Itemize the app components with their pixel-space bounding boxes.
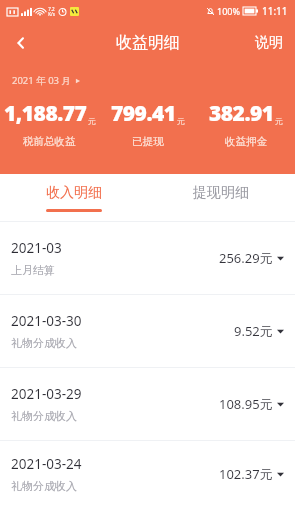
staticText: 礼物分成收入 — [11, 479, 77, 493]
button[interactable]: 说明 — [243, 22, 295, 64]
staticText: 说明 — [255, 34, 283, 52]
staticText: 元 — [88, 116, 96, 126]
staticText: 2021-03-30 — [11, 312, 82, 330]
staticText: 11:11 — [262, 4, 288, 18]
staticText: 礼物分成收入 — [11, 336, 77, 350]
staticText: 102.37元 — [219, 465, 273, 483]
staticText: 收入明细 — [46, 184, 102, 202]
staticText: 2021 年 03 月 — [12, 74, 72, 87]
staticText: 799.41 — [111, 99, 176, 128]
button[interactable]: 2021-03 — [0, 222, 295, 294]
button[interactable]: 收入明细 — [0, 174, 147, 222]
button[interactable]: 2021-03-24 — [0, 441, 295, 506]
staticText: 1,188.77 — [4, 99, 87, 128]
staticText: 税前总收益 — [23, 135, 76, 148]
staticText: 已提现 — [132, 135, 164, 148]
staticText: 382.91 — [209, 99, 274, 128]
staticText: 提现明细 — [193, 184, 249, 202]
staticText: 2021-03-29 — [11, 385, 82, 403]
staticText: 100% — [217, 5, 240, 17]
staticText: 收益押金 — [225, 135, 267, 148]
staticText: 收益明细 — [116, 33, 180, 53]
staticText: 元 — [177, 116, 185, 126]
staticText: 礼物分成收入 — [11, 409, 77, 423]
button[interactable]: 提现明细 — [147, 174, 295, 222]
staticText: 108.95元 — [219, 395, 273, 413]
button[interactable]: Back — [0, 22, 42, 64]
staticText: 2021-03-24 — [11, 455, 82, 473]
staticText: 元 — [275, 116, 283, 126]
button[interactable]: 2021-03-29 — [0, 368, 295, 440]
staticText: 256.29元 — [219, 249, 273, 267]
staticText: 上月结算 — [11, 263, 55, 277]
button[interactable]: 2021-03-30 — [0, 295, 295, 367]
staticText: 2021-03 — [11, 239, 62, 257]
button[interactable]: 2021 年 03 月 — [10, 72, 83, 89]
staticText: 7.2 K/s — [48, 6, 55, 17]
staticText: 9.52元 — [234, 322, 273, 340]
